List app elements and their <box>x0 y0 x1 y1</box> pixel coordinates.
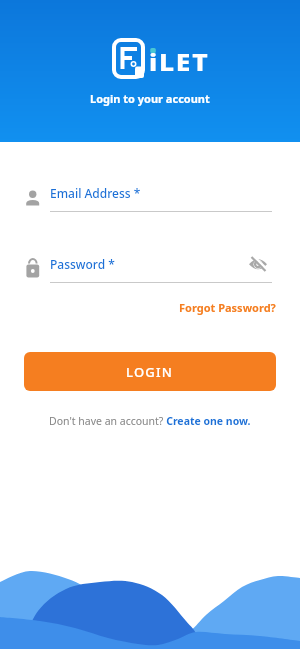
staticText: LOGIN <box>126 363 174 381</box>
button[interactable]: Email Address * <box>24 179 276 207</box>
staticText: Login to your account <box>90 91 210 106</box>
button[interactable]: Forgot Password? <box>179 300 276 315</box>
staticText: iLET <box>149 46 210 77</box>
staticText: Password * <box>50 256 115 272</box>
button[interactable]: Don't have an account? Create one now. <box>49 414 251 428</box>
staticText: Forgot Password? <box>179 300 276 315</box>
button[interactable] <box>248 256 268 273</box>
staticText: Email Address * <box>50 185 141 201</box>
button[interactable]: LOGIN <box>24 352 276 391</box>
staticText: Don't have an account? Create one now. <box>49 414 251 428</box>
button[interactable]: Password * <box>24 250 276 278</box>
